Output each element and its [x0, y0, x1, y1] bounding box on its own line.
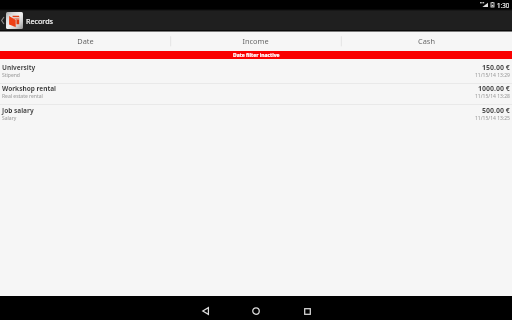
- staticText: Workshop rental: [2, 84, 57, 93]
- button[interactable]: Navigate up: [0, 9, 56, 30]
- staticText: Records: [26, 16, 54, 26]
- button[interactable]: Income: [170, 30, 341, 51]
- button[interactable]: Workshop rental: [0, 80, 512, 101]
- staticText: 11/15/14 13:29: [475, 72, 510, 79]
- staticText: 500.00 €: [482, 106, 510, 116]
- staticText: Real estate rental: [2, 93, 43, 100]
- staticText: Cash: [418, 36, 435, 46]
- staticText: Stipend: [2, 72, 20, 79]
- staticText: Income: [242, 36, 269, 46]
- staticText: University: [2, 63, 36, 72]
- staticText: Job salary: [2, 106, 34, 115]
- button[interactable]: Back: [193, 300, 217, 320]
- staticText: 11/15/14 13:25: [475, 115, 510, 122]
- button[interactable]: University: [0, 59, 512, 80]
- button[interactable]: Cash: [341, 30, 512, 51]
- button[interactable]: Home: [244, 300, 268, 320]
- button[interactable]: Job salary: [0, 102, 512, 123]
- button[interactable]: Date: [0, 30, 170, 51]
- button[interactable]: Recent apps: [295, 300, 319, 320]
- button[interactable]: Date filter inactive: [0, 51, 512, 59]
- staticText: 1:30: [497, 1, 510, 9]
- staticText: Date filter inactive: [233, 52, 280, 59]
- staticText: 1000.00 €: [478, 84, 510, 94]
- staticText: Date: [77, 36, 94, 46]
- staticText: Salary: [2, 115, 17, 122]
- staticText: 150.00 €: [482, 63, 510, 73]
- staticText: 11/15/14 13:28: [475, 93, 510, 100]
